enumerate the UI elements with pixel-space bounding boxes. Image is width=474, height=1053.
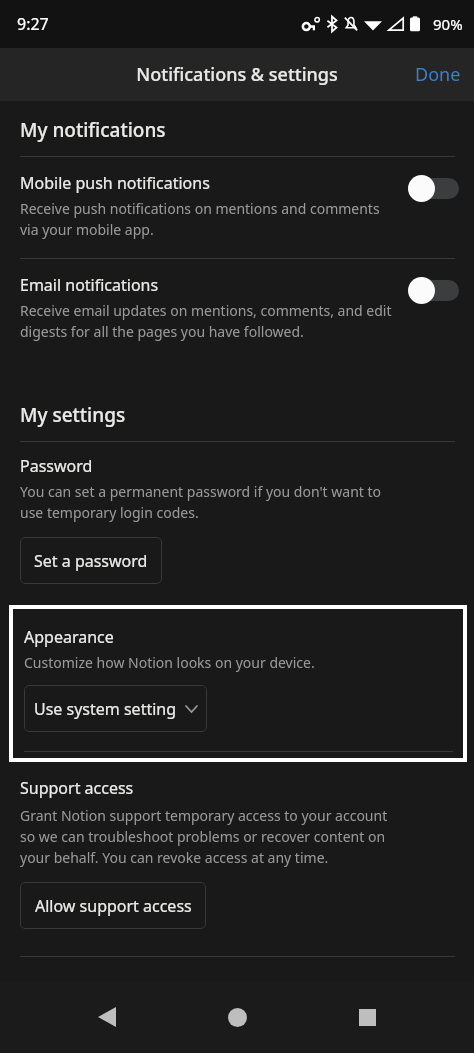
staticText: so we can troubleshoot problems or recov… [20,827,386,846]
staticText: Receive push notifications on mentions a… [20,199,380,218]
staticText: You can set a permanent password if you … [20,482,382,501]
button[interactable]: Set a password [20,537,162,584]
staticText: Done [415,62,461,87]
staticText: My notifications [20,117,166,143]
staticText: Customize how Notion looks on your devic… [24,653,315,672]
staticText: via your mobile app. [20,220,154,239]
staticText: Use system setting [34,698,177,720]
staticText: 9:27 [17,13,49,35]
button[interactable]: Mobile push notifications [408,175,459,202]
button[interactable]: Email notifications [0,259,474,360]
staticText: Password [20,455,93,477]
staticText: use temporary login codes. [20,503,199,522]
staticText: Support access [20,777,134,799]
staticText: Email notifications [20,274,159,296]
staticText: Notifications & settings [136,62,338,87]
button[interactable]: Home [214,994,260,1040]
button[interactable]: Recent apps [344,994,390,1040]
button[interactable]: Done [402,52,474,97]
staticText: your behalf. You can revoke access at an… [20,848,329,867]
button[interactable]: Back [84,994,130,1040]
staticText: My settings [20,402,126,428]
button[interactable]: Allow support access [20,882,206,929]
button[interactable]: Email notifications [408,277,459,304]
staticText: Grant Notion support temporary access to… [20,806,388,825]
staticText: Appearance [24,626,114,648]
staticText: Receive email updates on mentions, comme… [20,301,392,320]
button[interactable]: Use system setting [24,685,207,732]
staticText: 90% [433,14,463,34]
staticText: Mobile push notifications [20,172,210,194]
staticText: digests for all the pages you have follo… [20,322,304,341]
staticText: Allow support access [35,895,192,917]
staticText: Set a password [34,550,148,572]
button[interactable]: Mobile push notifications [0,157,474,258]
